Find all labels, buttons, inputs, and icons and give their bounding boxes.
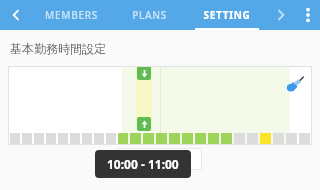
staticText: SETTING [203, 8, 251, 22]
button[interactable]: 10:00 - 11:00 [95, 150, 191, 178]
button[interactable]: Move end [137, 117, 151, 131]
staticText: PLANS [132, 8, 167, 22]
button[interactable]: Move start [137, 66, 151, 80]
staticText: 基本勤務時間設定 [10, 41, 106, 56]
staticText: MEMBERS [45, 8, 98, 22]
button[interactable]: SETTING [188, 0, 266, 30]
button[interactable]: Brush [284, 74, 306, 96]
button[interactable]: PLANS [110, 0, 188, 30]
button[interactable]: Next [266, 0, 296, 30]
staticText: 02:00 - 19:00 [130, 152, 190, 166]
button[interactable]: MEMBERS [32, 0, 110, 30]
staticText: 10:00 - 11:00 [107, 156, 179, 172]
button[interactable]: More options [296, 0, 320, 30]
button[interactable]: Back [0, 0, 32, 30]
